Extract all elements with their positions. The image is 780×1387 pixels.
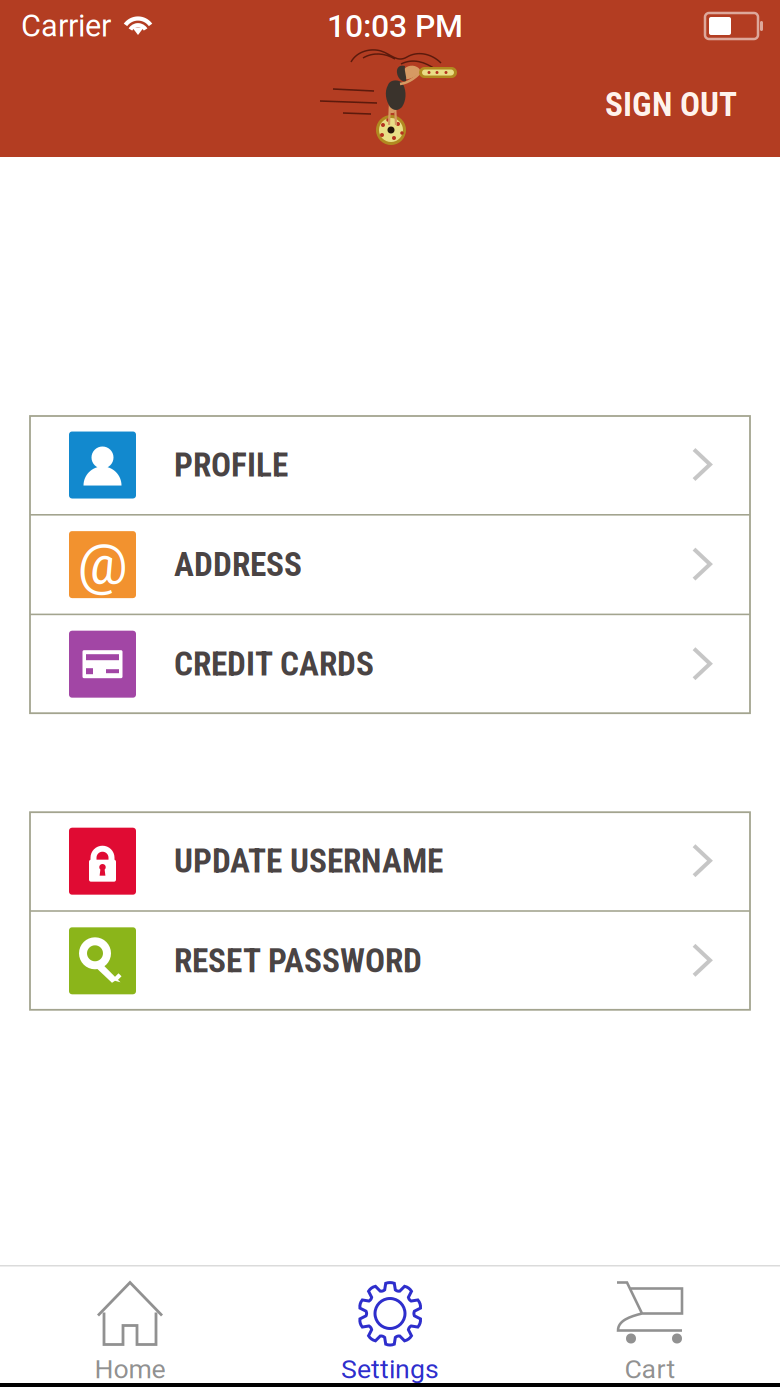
button[interactable]: Cart: [520, 1266, 780, 1383]
button[interactable]: Home: [0, 1266, 260, 1383]
button[interactable]: UPDATE USERNAME: [30, 812, 750, 910]
button[interactable]: PROFILE: [30, 416, 750, 514]
staticText: ADDRESS: [174, 545, 302, 584]
staticText: RESET PASSWORD: [174, 941, 422, 980]
staticText: PROFILE: [174, 445, 288, 485]
staticText: Settings: [341, 1353, 439, 1385]
staticText: Cart: [624, 1353, 675, 1385]
staticText: Home: [94, 1353, 165, 1385]
staticText: UPDATE USERNAME: [174, 842, 443, 881]
button[interactable]: SIGN OUT: [593, 75, 749, 134]
button[interactable]: @: [30, 516, 750, 614]
staticText: 10:03 PM: [327, 7, 463, 45]
staticText: CREDIT CARDS: [174, 645, 374, 684]
button[interactable]: Settings: [260, 1266, 520, 1383]
staticText: @: [77, 532, 127, 597]
staticText: SIGN OUT: [605, 85, 737, 124]
button[interactable]: RESET PASSWORD: [30, 912, 750, 1010]
staticText: Carrier: [21, 8, 111, 44]
button[interactable]: CREDIT CARDS: [30, 615, 750, 713]
